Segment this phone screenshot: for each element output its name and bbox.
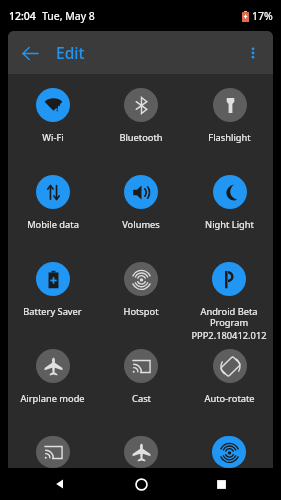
button[interactable]: Recent apps: [201, 468, 241, 500]
staticText: 12:04: [9, 9, 36, 23]
staticText: Mobile data: [27, 218, 79, 231]
button[interactable]: Location: [185, 436, 273, 468]
staticText: Auto-rotate: [204, 392, 255, 405]
staticText: Flashlight: [208, 131, 251, 144]
button[interactable]: Bluetooth: [97, 88, 185, 175]
button[interactable]: Back: [12, 35, 48, 71]
staticText: Tue, May 8: [42, 9, 95, 23]
button[interactable]: Home: [121, 468, 161, 500]
staticText: Bluetooth: [119, 131, 163, 144]
staticText: 17%: [252, 9, 273, 23]
button[interactable]: Wi-Fi: [8, 88, 97, 175]
button[interactable]: Cast: [97, 349, 185, 436]
button[interactable]: Back: [40, 468, 80, 500]
staticText: Android Beta Program: [185, 305, 273, 329]
staticText: Volumes: [122, 218, 160, 231]
button[interactable]: Volumes: [97, 175, 185, 262]
button[interactable]: Hotspot: [97, 262, 185, 349]
staticText: Airplane mode: [20, 392, 85, 405]
button[interactable]: Battery Saver: [8, 262, 97, 349]
button[interactable]: Auto-rotate: [185, 349, 273, 436]
button[interactable]: Android Beta Program: [185, 262, 273, 349]
button[interactable]: More options: [235, 35, 271, 71]
button[interactable]: Mobile data: [8, 175, 97, 262]
staticText: PPP2.180412.012: [191, 329, 267, 342]
button[interactable]: Screenshot: [8, 436, 97, 468]
staticText: Night Light: [205, 218, 254, 231]
button[interactable]: Flashlight: [185, 88, 273, 175]
staticText: Hotspot: [123, 305, 159, 318]
staticText: Edit: [56, 42, 85, 63]
staticText: Battery Saver: [23, 305, 82, 318]
button[interactable]: Nearby: [97, 436, 185, 468]
button[interactable]: Airplane mode: [8, 349, 97, 436]
staticText: Wi-Fi: [42, 131, 64, 144]
button[interactable]: Night Light: [185, 175, 273, 262]
staticText: Cast: [132, 392, 151, 405]
